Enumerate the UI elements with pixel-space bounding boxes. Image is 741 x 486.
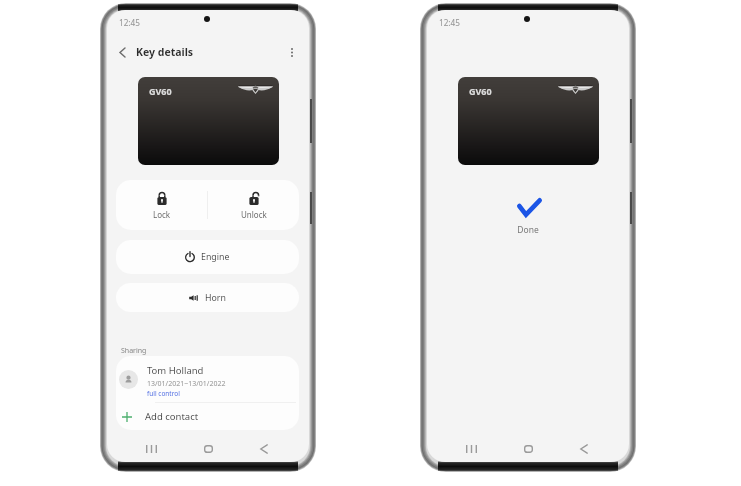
staticText: 13/01/2021~13/01/2022 (147, 379, 226, 389)
button[interactable]: Horn (116, 283, 299, 312)
button[interactable]: Tom Holland (116, 356, 299, 402)
staticText: Lock (153, 209, 171, 220)
staticText: Add contact (145, 410, 199, 423)
staticText: Key details (136, 45, 194, 59)
button[interactable]: Back (250, 437, 278, 461)
staticText: Horn (205, 292, 226, 304)
staticText: Unlock (241, 209, 267, 220)
button[interactable]: GV60 (138, 77, 279, 165)
button[interactable]: Lock (116, 180, 207, 230)
staticText: Tom Holland (147, 364, 204, 377)
button[interactable]: Done (517, 198, 542, 217)
staticText: Engine (201, 251, 230, 263)
staticText: Done (427, 224, 629, 236)
button[interactable]: Recent apps (137, 437, 165, 461)
button[interactable]: Add contact (116, 403, 299, 430)
button[interactable]: GV60 (458, 77, 599, 165)
staticText: GV60 (469, 85, 492, 97)
staticText: GV60 (149, 85, 172, 97)
button[interactable]: Back (107, 41, 133, 63)
staticText: 12:45 (119, 17, 140, 28)
staticText: 12:45 (439, 17, 460, 28)
button[interactable]: Unlock (208, 180, 299, 230)
button[interactable]: Recent apps (457, 437, 485, 461)
button[interactable]: Home (514, 437, 542, 461)
button[interactable]: More options (281, 41, 303, 63)
button[interactable]: Home (194, 437, 222, 461)
staticText: Sharing (121, 346, 147, 356)
staticText: full control (147, 389, 180, 398)
button[interactable]: Engine (116, 240, 299, 274)
button[interactable]: Back (570, 437, 598, 461)
